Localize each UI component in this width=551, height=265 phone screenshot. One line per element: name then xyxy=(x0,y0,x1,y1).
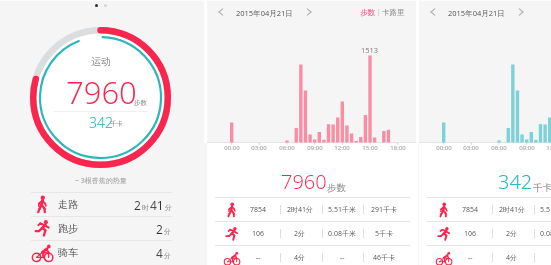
staticText: 2 xyxy=(156,221,163,237)
staticText: 4 xyxy=(156,245,163,261)
staticText: 骑车 xyxy=(58,246,78,259)
staticText: 分 xyxy=(164,251,171,260)
staticText: 291千卡 xyxy=(371,205,398,215)
staticText: 2 xyxy=(134,197,141,213)
button[interactable]: Previous day xyxy=(427,6,439,18)
button[interactable]: 7854 xyxy=(207,198,418,221)
button[interactable]: Previous day xyxy=(215,6,227,18)
staticText: ~ 3根香蕉的热量 xyxy=(75,176,127,186)
button[interactable]: 106 xyxy=(207,222,418,245)
staticText: 2时41分 xyxy=(287,205,314,215)
button[interactable]: Next day xyxy=(515,6,527,18)
button[interactable]: 106 xyxy=(419,222,551,245)
staticText: 342 xyxy=(89,113,113,132)
staticText: 4分 xyxy=(294,253,306,263)
staticText: 4分 xyxy=(506,253,518,263)
staticText: 06:00 xyxy=(279,144,295,152)
staticText: 2分 xyxy=(294,229,306,239)
staticText: 18:00 xyxy=(390,144,406,152)
staticText: 106 xyxy=(464,229,477,239)
staticText: 342 xyxy=(498,168,533,195)
button[interactable]: 走路 xyxy=(31,193,172,216)
staticText: 时 xyxy=(142,203,149,212)
staticText: 41 xyxy=(150,197,164,213)
button[interactable]: 跑步 xyxy=(31,217,172,240)
staticText: 0.08千米 xyxy=(540,229,551,239)
staticText: 00:00 xyxy=(436,144,452,152)
staticText: 卡路里 xyxy=(382,8,405,17)
staticText: 跑步 xyxy=(58,222,78,235)
staticText: 千卡 xyxy=(533,182,551,194)
button[interactable]: 卡路里 xyxy=(379,8,408,17)
staticText: 步数 xyxy=(327,182,346,194)
staticText: 7960 xyxy=(66,71,137,113)
button[interactable]: Next day xyxy=(303,6,315,18)
staticText: 00:00 xyxy=(224,144,240,152)
staticText: 09:00 xyxy=(519,144,535,152)
staticText: 1513 xyxy=(361,45,379,55)
staticText: 分 xyxy=(165,203,172,212)
staticText: 7854 xyxy=(462,205,479,215)
staticText: -- xyxy=(340,253,345,263)
staticText: 2分 xyxy=(506,229,518,239)
staticText: 46千卡 xyxy=(373,253,396,263)
staticText: -- xyxy=(256,253,261,263)
staticText: 运动 xyxy=(91,55,111,68)
staticText: 15:00 xyxy=(362,144,378,152)
staticText: 2015年04月21日 xyxy=(236,8,293,18)
staticText: 2015年04月21日 xyxy=(448,8,505,18)
staticText: 5千卡 xyxy=(375,229,394,239)
button[interactable]: -- xyxy=(419,246,551,265)
staticText: 2时41分 xyxy=(499,205,526,215)
staticText: 0.08千米 xyxy=(328,229,356,239)
staticText: 06:00 xyxy=(491,144,507,152)
button[interactable]: 步数 xyxy=(357,8,378,17)
staticText: 步数 xyxy=(360,8,375,17)
staticText: 09:00 xyxy=(307,144,323,152)
staticText: 12:00 xyxy=(546,144,551,152)
staticText: 5.51千米 xyxy=(540,205,551,215)
button[interactable]: 骑车 xyxy=(31,241,172,264)
staticText: 千卡 xyxy=(110,120,123,128)
button[interactable]: -- xyxy=(207,246,418,265)
staticText: 走路 xyxy=(58,198,78,211)
staticText: 03:00 xyxy=(463,144,479,152)
staticText: 12:00 xyxy=(334,144,350,152)
staticText: 步数 xyxy=(134,99,147,107)
staticText: 分 xyxy=(164,227,171,236)
button[interactable]: 7854 xyxy=(419,198,551,221)
staticText: -- xyxy=(468,253,473,263)
staticText: 106 xyxy=(252,229,265,239)
staticText: 7960 xyxy=(281,168,327,195)
staticText: 03:00 xyxy=(251,144,267,152)
staticText: 7854 xyxy=(250,205,267,215)
staticText: 5.51千米 xyxy=(328,205,356,215)
